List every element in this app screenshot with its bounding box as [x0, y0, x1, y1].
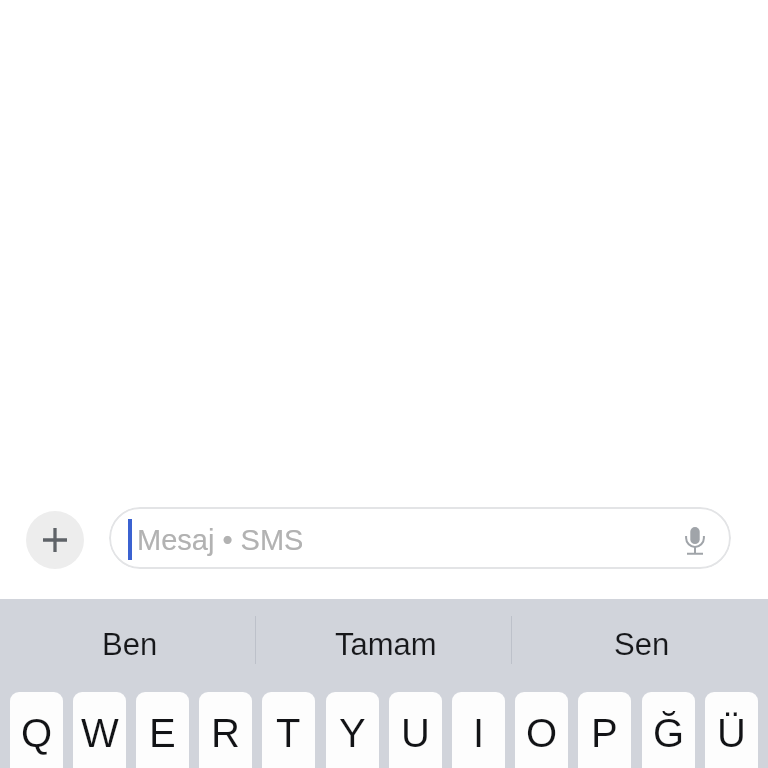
button[interactable]: Ğ — [642, 692, 695, 768]
staticText: R — [211, 711, 240, 756]
button[interactable]: Ü — [705, 692, 758, 768]
button[interactable]: Ben — [0, 599, 256, 679]
staticText: W — [81, 711, 119, 756]
button[interactable]: Voice input — [673, 519, 717, 563]
staticText: O — [526, 711, 558, 756]
staticText: Ğ — [653, 711, 685, 756]
staticText: Mesaj • SMS — [137, 524, 304, 556]
button[interactable]: I — [452, 692, 505, 768]
staticText: I — [473, 711, 485, 756]
staticText: Y — [339, 711, 366, 756]
button[interactable]: Y — [326, 692, 379, 768]
staticText: Ben — [102, 627, 158, 662]
staticText: Ü — [717, 711, 746, 756]
button[interactable]: Tamam — [256, 599, 512, 679]
button[interactable]: E — [136, 692, 189, 768]
button[interactable]: Sen — [512, 599, 768, 679]
staticText: Sen — [614, 627, 670, 662]
button[interactable]: W — [73, 692, 126, 768]
staticText: Q — [21, 711, 53, 756]
staticText: T — [276, 711, 301, 756]
button[interactable]: R — [199, 692, 252, 768]
button[interactable]: P — [578, 692, 631, 768]
staticText: P — [591, 711, 618, 756]
staticText: Tamam — [335, 627, 437, 662]
button[interactable]: O — [515, 692, 568, 768]
staticText: U — [401, 711, 430, 756]
button[interactable]: Mesaj • SMS — [109, 507, 731, 569]
button[interactable]: U — [389, 692, 442, 768]
button[interactable]: T — [262, 692, 315, 768]
staticText: E — [149, 711, 176, 756]
button[interactable]: Q — [10, 692, 63, 768]
button[interactable]: Add attachment — [26, 511, 84, 569]
